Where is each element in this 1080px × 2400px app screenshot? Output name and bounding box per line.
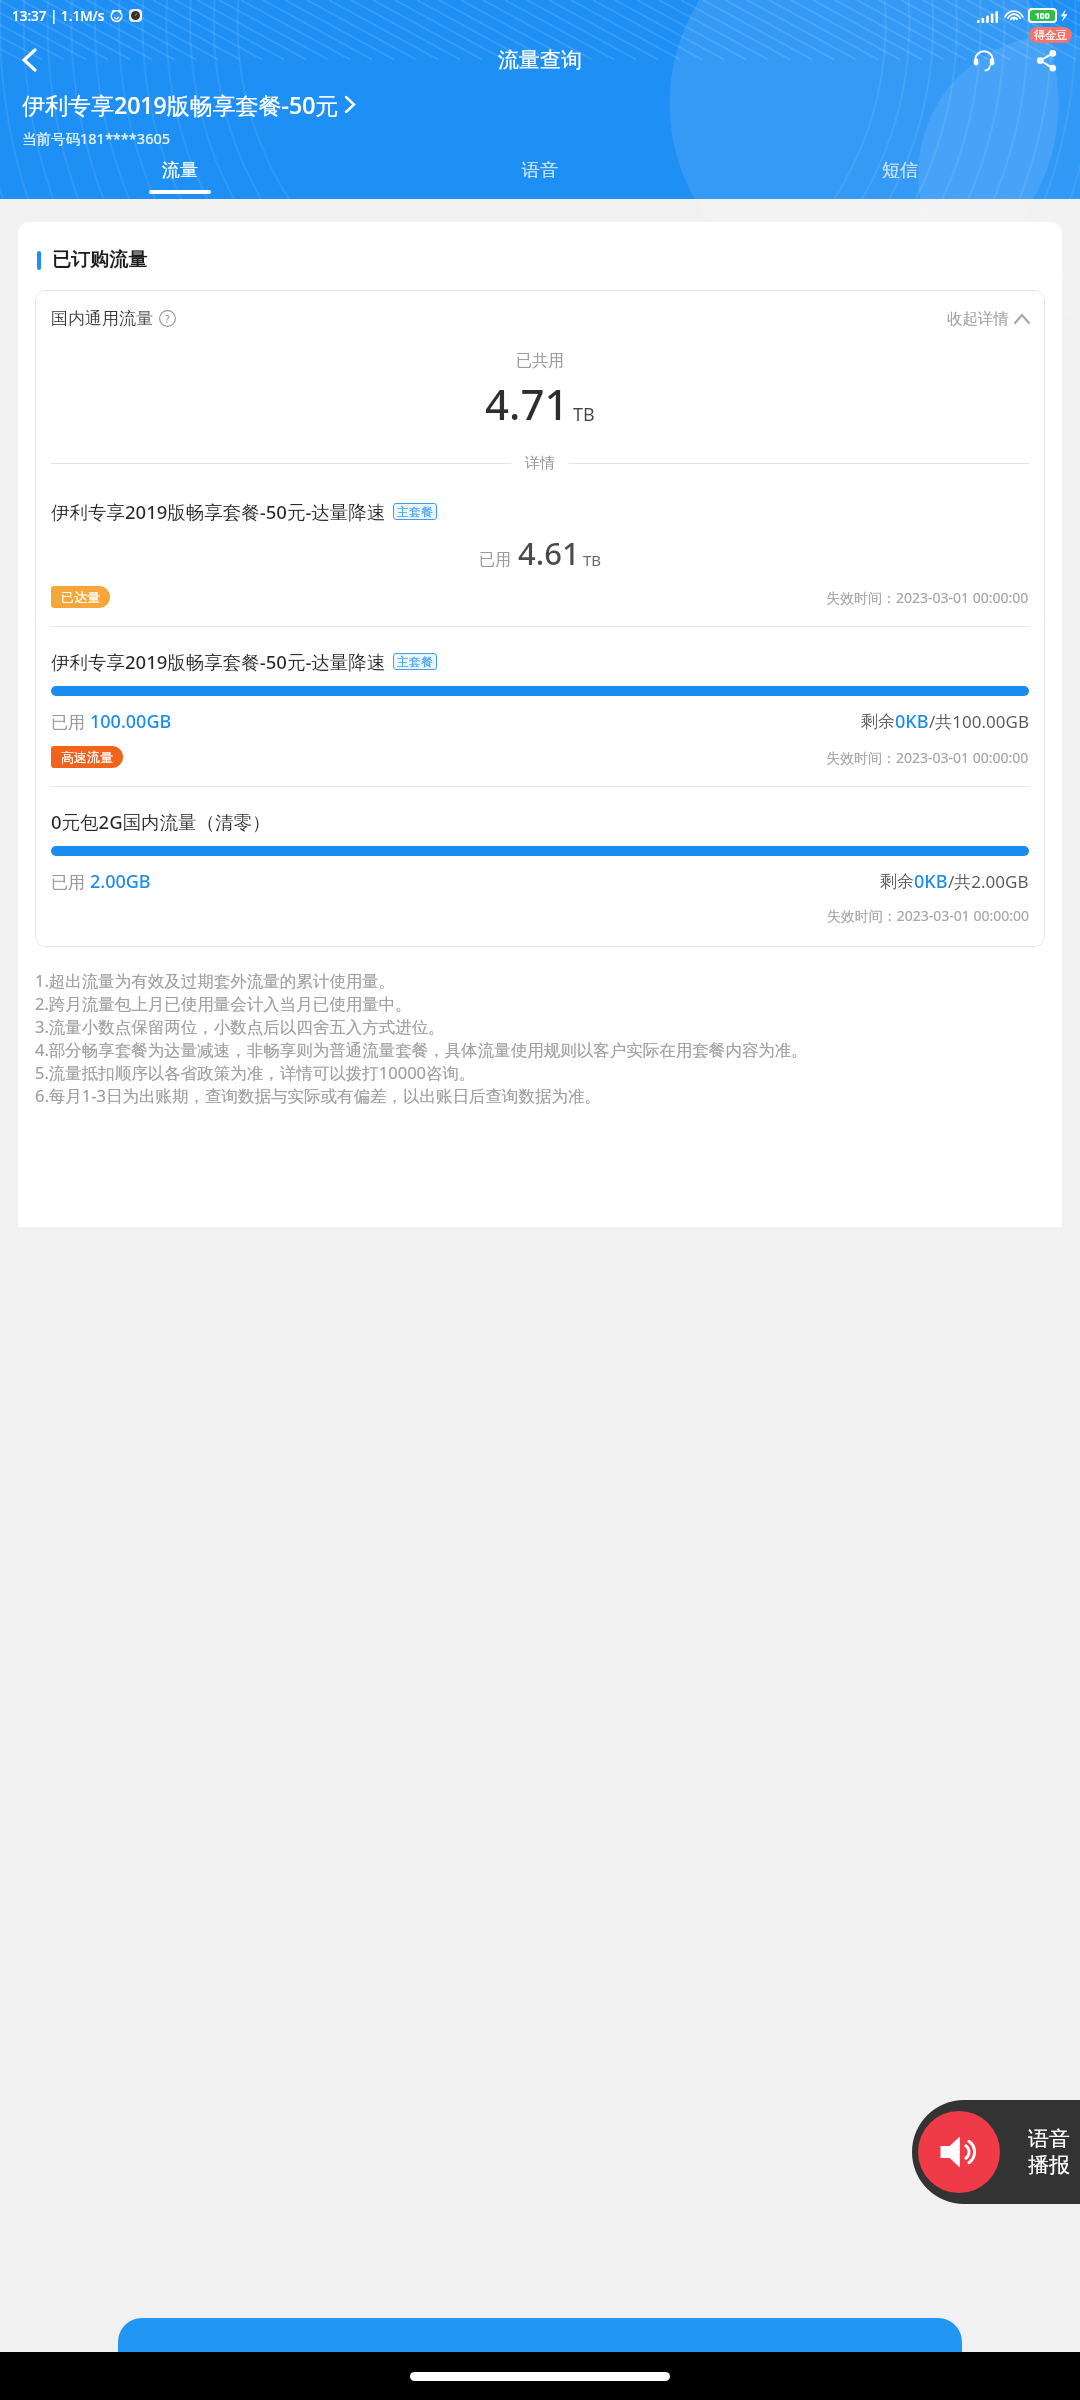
staticText: 已用 bbox=[479, 550, 511, 570]
staticText: 100.00GB bbox=[90, 709, 172, 734]
button[interactable]: 得金豆 bbox=[1034, 28, 1067, 42]
staticText: 已订购流量 bbox=[52, 248, 147, 272]
staticText: 流量 bbox=[162, 159, 198, 182]
staticText: 播报 bbox=[1028, 2152, 1070, 2178]
staticText: 当前号码181****3605 bbox=[22, 128, 171, 148]
staticText: TB bbox=[573, 402, 595, 427]
staticText: ? bbox=[165, 312, 170, 326]
staticText: 4.71 bbox=[485, 375, 569, 432]
staticText: 高速流量 bbox=[61, 749, 113, 765]
button[interactable]: 语音 bbox=[360, 156, 720, 199]
staticText: 失效时间：2023-03-01 00:00:00 bbox=[826, 748, 1029, 767]
staticText: 2.00GB bbox=[90, 869, 151, 894]
staticText: 1.超出流量为有效及过期套外流量的累计使用量。 bbox=[35, 969, 396, 992]
button[interactable] bbox=[118, 2318, 962, 2352]
staticText: 短信 bbox=[882, 159, 918, 182]
staticText: 语音 bbox=[1028, 2126, 1070, 2152]
staticText: 流量查询 bbox=[498, 47, 582, 73]
staticText: 主套餐 bbox=[397, 504, 433, 519]
staticText: 0KB bbox=[895, 709, 929, 734]
button[interactable]: Voice broadcast bbox=[912, 2100, 1080, 2204]
staticText: 得金豆 bbox=[1034, 28, 1067, 42]
staticText: 伊利专享2019版畅享套餐-50元 bbox=[22, 89, 339, 120]
button[interactable]: 流量 bbox=[0, 156, 360, 199]
button[interactable]: 伊利专享2019版畅享套餐-50元 bbox=[22, 89, 354, 120]
staticText: 5.流量抵扣顺序以各省政策为准，详情可以拨打10000咨询。 bbox=[35, 1061, 476, 1084]
staticText: 详情 bbox=[525, 454, 555, 473]
staticText: 主套餐 bbox=[397, 654, 433, 669]
button[interactable]: Share bbox=[1024, 38, 1068, 82]
staticText: 4.部分畅享套餐为达量减速，非畅享则为普通流量套餐，具体流量使用规则以客户实际在… bbox=[35, 1038, 808, 1061]
staticText: 剩余 bbox=[880, 871, 914, 892]
button[interactable]: Customer service bbox=[962, 38, 1006, 82]
staticText: 2.跨月流量包上月已使用量会计入当月已使用量中。 bbox=[35, 992, 412, 1015]
staticText: 6.每月1-3日为出账期，查询数据与实际或有偏差，以出账日后查询数据为准。 bbox=[35, 1084, 602, 1107]
staticText: 收起详情 bbox=[947, 309, 1009, 329]
staticText: 失效时间：2023-03-01 00:00:00 bbox=[51, 906, 1029, 925]
staticText: /共100.00GB bbox=[929, 710, 1029, 733]
staticText: 语音 bbox=[522, 159, 558, 182]
button[interactable]: Help bbox=[159, 310, 176, 327]
staticText: 伊利专享2019版畅享套餐-50元-达量降速 bbox=[51, 649, 386, 674]
staticText: 100 bbox=[1035, 10, 1050, 21]
staticText: 0元包2G国内流量（清零） bbox=[51, 809, 271, 834]
staticText: 已用 bbox=[51, 710, 90, 733]
staticText: 国内通用流量 bbox=[51, 308, 153, 329]
button[interactable]: 短信 bbox=[720, 156, 1080, 199]
staticText: 已用 bbox=[51, 870, 90, 893]
staticText: 3.流量小数点保留两位，小数点后以四舍五入方式进位。 bbox=[35, 1015, 445, 1038]
staticText: 13:37 | 1.1M/s bbox=[12, 7, 105, 25]
staticText: 已达量 bbox=[61, 589, 100, 605]
button[interactable]: Back bbox=[6, 37, 52, 83]
staticText: 已共用 bbox=[51, 351, 1029, 371]
staticText: 剩余 bbox=[861, 711, 895, 732]
staticText: /共2.00GB bbox=[948, 870, 1029, 893]
staticText: 0KB bbox=[914, 869, 948, 894]
staticText: 失效时间：2023-03-01 00:00:00 bbox=[826, 588, 1029, 607]
staticText: 伊利专享2019版畅享套餐-50元-达量降速 bbox=[51, 499, 386, 524]
staticText: TB bbox=[583, 550, 602, 570]
staticText: 4.61 bbox=[518, 532, 580, 574]
button[interactable]: 收起详情 bbox=[947, 309, 1029, 329]
